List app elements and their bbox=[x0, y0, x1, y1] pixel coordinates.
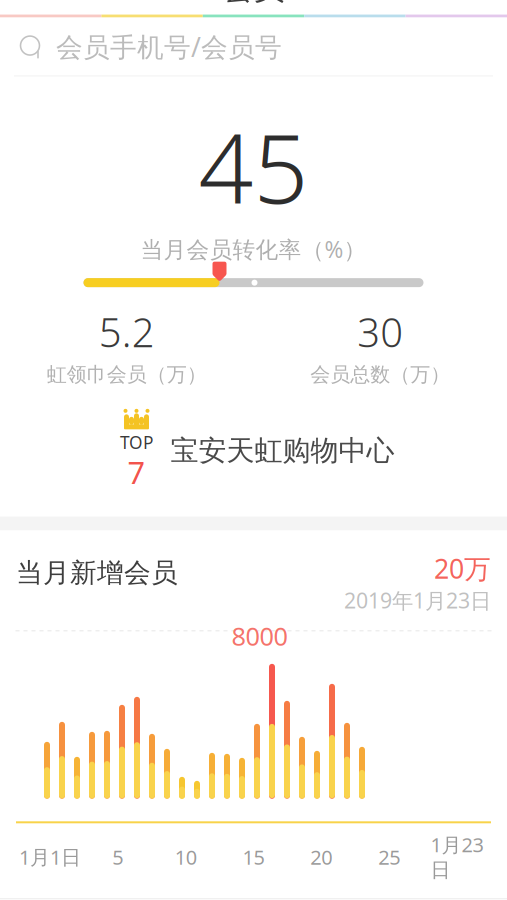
staticText: 会员总数（万） bbox=[310, 362, 450, 387]
staticText: 7 bbox=[127, 452, 145, 492]
staticText: 当月新增会员 bbox=[16, 557, 178, 589]
staticText: 宝安天虹购物中心 bbox=[170, 433, 394, 468]
staticText: 1月1日 bbox=[19, 844, 81, 870]
staticText: 15 bbox=[242, 844, 264, 870]
button[interactable]: 会员手机号/会员号 bbox=[0, 18, 507, 76]
staticText: 1月23日 bbox=[431, 831, 484, 882]
staticText: 当月会员转化率（%） bbox=[140, 234, 366, 264]
staticText: 会员手机号/会员号 bbox=[56, 29, 282, 64]
staticText: 8000 bbox=[231, 619, 287, 653]
staticText: 45 bbox=[198, 103, 308, 230]
staticText: 20 bbox=[310, 844, 332, 870]
button[interactable]: TOP bbox=[112, 409, 394, 492]
staticText: 5 bbox=[112, 844, 123, 870]
staticText: 30 bbox=[357, 305, 403, 358]
staticText: TOP bbox=[120, 431, 153, 454]
staticText: 5.2 bbox=[99, 305, 155, 358]
staticText: 虹领巾会员（万） bbox=[47, 362, 207, 387]
staticText: 2019年1月23日 bbox=[344, 586, 491, 614]
staticText: 20万 bbox=[434, 551, 491, 586]
staticText: 25 bbox=[378, 844, 400, 870]
staticText: 10 bbox=[175, 844, 197, 870]
staticText: 会员 bbox=[222, 0, 284, 7]
